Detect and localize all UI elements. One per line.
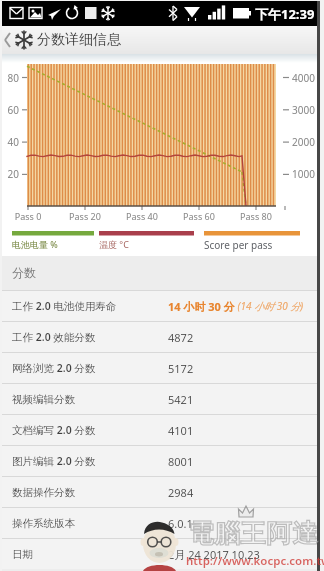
button[interactable]: 网络浏览 2.0 分数: [2, 352, 317, 383]
staticText: Pass 60: [179, 210, 219, 222]
staticText: 文档编写 2.0 分数: [12, 423, 96, 437]
staticText: 下午12:39: [255, 5, 315, 23]
staticText: 2000: [292, 135, 315, 149]
staticText: 電腦王阿達: [188, 518, 318, 549]
staticText: 图片编辑 2.0 分数: [12, 454, 96, 468]
staticText: 5172: [168, 361, 194, 376]
staticText: 电池电量 %: [12, 238, 58, 250]
staticText: 视频编辑分数: [12, 393, 75, 406]
staticText: Pass 0: [8, 210, 48, 222]
staticText: 4000: [292, 71, 315, 85]
staticText: 4872: [168, 330, 194, 345]
staticText: (14 小时 30 分): [235, 299, 304, 313]
staticText: Pass 40: [122, 210, 162, 222]
staticText: 工作 2.0 效能分数: [12, 330, 96, 344]
staticText: 日期: [12, 548, 33, 561]
staticText: 8001: [168, 454, 194, 469]
staticText: 分数: [12, 265, 36, 280]
staticText: 40: [2, 135, 19, 149]
staticText: 网络浏览 2.0 分数: [12, 361, 96, 375]
staticText: 数据操作分数: [12, 486, 75, 499]
staticText: 2984: [168, 485, 194, 500]
button[interactable]: 分数详细信息: [2, 26, 317, 54]
staticText: 20: [2, 167, 19, 181]
staticText: 60: [2, 103, 19, 117]
staticText: 操作系统版本: [12, 517, 75, 530]
button[interactable]: 工作 2.0 效能分数: [2, 321, 317, 352]
staticText: 5421: [168, 392, 194, 407]
staticText: Pass 80: [236, 210, 276, 222]
button[interactable]: 日期: [2, 538, 317, 569]
staticText: 2月 24 2017 10.23: [168, 547, 260, 562]
staticText: 温度 °C: [99, 238, 129, 250]
button[interactable]: 文档编写 2.0 分数: [2, 414, 317, 445]
button[interactable]: 视频编辑分数: [2, 383, 317, 414]
staticText: 4101: [168, 423, 194, 438]
staticText: Score per pass: [204, 238, 273, 252]
staticText: 6.0.1: [168, 516, 193, 531]
staticText: 工作 2.0 电池使用寿命: [12, 299, 117, 313]
staticText: 3000: [292, 103, 315, 117]
button[interactable]: 图片编辑 2.0 分数: [2, 445, 317, 476]
staticText: 14 小时 30 分: [168, 299, 235, 314]
button[interactable]: 操作系统版本: [2, 507, 317, 538]
staticText: 80: [2, 71, 19, 85]
staticText: 1000: [292, 167, 315, 181]
staticText: 電腦王阿達: [188, 518, 318, 549]
staticText: Pass 20: [65, 210, 105, 222]
staticText: 分数详细信息: [37, 31, 121, 49]
button[interactable]: 数据操作分数: [2, 476, 317, 507]
staticText: http://www.kocpc.com.tw: [186, 553, 324, 569]
button[interactable]: 工作 2.0 电池使用寿命: [2, 290, 317, 321]
